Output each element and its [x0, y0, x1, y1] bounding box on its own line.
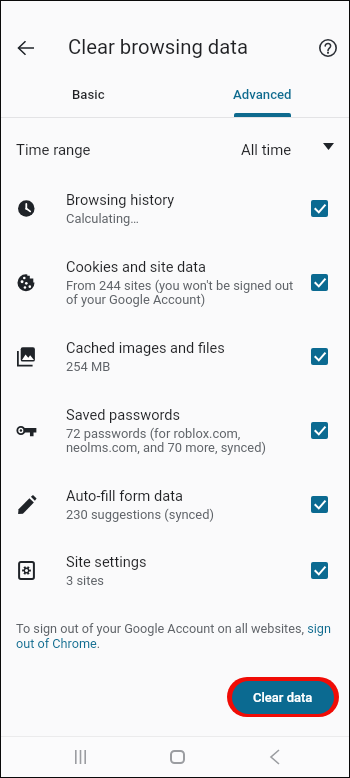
button[interactable]: Back — [251, 737, 299, 777]
button[interactable]: Toggle Browsing history — [311, 200, 328, 217]
staticText: Advanced — [233, 87, 292, 102]
button[interactable]: Back — [3, 25, 49, 71]
button[interactable]: Saved passwords — [1, 389, 349, 471]
staticText: From 244 sites (you won't be signed out … — [66, 278, 294, 307]
staticText: 3 sites — [66, 573, 104, 588]
staticText: Site settings — [66, 553, 147, 570]
staticText: Basic — [72, 87, 105, 102]
staticText: 254 MB — [66, 359, 111, 374]
button[interactable]: Toggle Saved passwords — [311, 422, 328, 439]
button[interactable]: Toggle Cookies and site data — [311, 274, 328, 291]
button[interactable]: Cookies and site data — [1, 241, 349, 323]
staticText: Calculating… — [66, 211, 139, 226]
button[interactable]: Site settings — [1, 537, 349, 603]
button[interactable]: Toggle Site settings — [311, 562, 328, 579]
button[interactable]: Clear data — [232, 681, 334, 714]
staticText: Clear browsing data — [68, 35, 248, 59]
button[interactable]: Time range — [1, 118, 349, 175]
button[interactable]: Help — [305, 25, 350, 71]
button[interactable]: Home — [153, 737, 201, 777]
button[interactable]: Toggle Cached images and files — [311, 348, 328, 365]
staticText: Cookies and site data — [66, 258, 206, 275]
staticText: To sign out of your Google Account on al… — [16, 621, 341, 651]
button[interactable]: Advanced — [175, 72, 349, 117]
staticText: Cached images and files — [66, 339, 225, 356]
button[interactable]: Auto-fill form data — [1, 471, 349, 537]
staticText: Clear data — [253, 690, 313, 705]
button[interactable]: Toggle Auto-fill form data — [311, 496, 328, 513]
button[interactable]: Recents — [56, 737, 104, 777]
staticText: Auto-fill form data — [66, 487, 183, 504]
staticText: Browsing history — [66, 191, 175, 208]
button[interactable]: Basic — [1, 72, 175, 117]
staticText: Time range — [16, 141, 91, 158]
staticText: 230 suggestions (synced) — [66, 507, 214, 522]
button[interactable]: Browsing history — [1, 175, 349, 241]
staticText: Saved passwords — [66, 406, 181, 423]
staticText: 72 passwords (for roblox.com, neolms.com… — [66, 426, 266, 455]
staticText: All time — [241, 141, 292, 158]
button[interactable]: Cached images and files — [1, 323, 349, 389]
